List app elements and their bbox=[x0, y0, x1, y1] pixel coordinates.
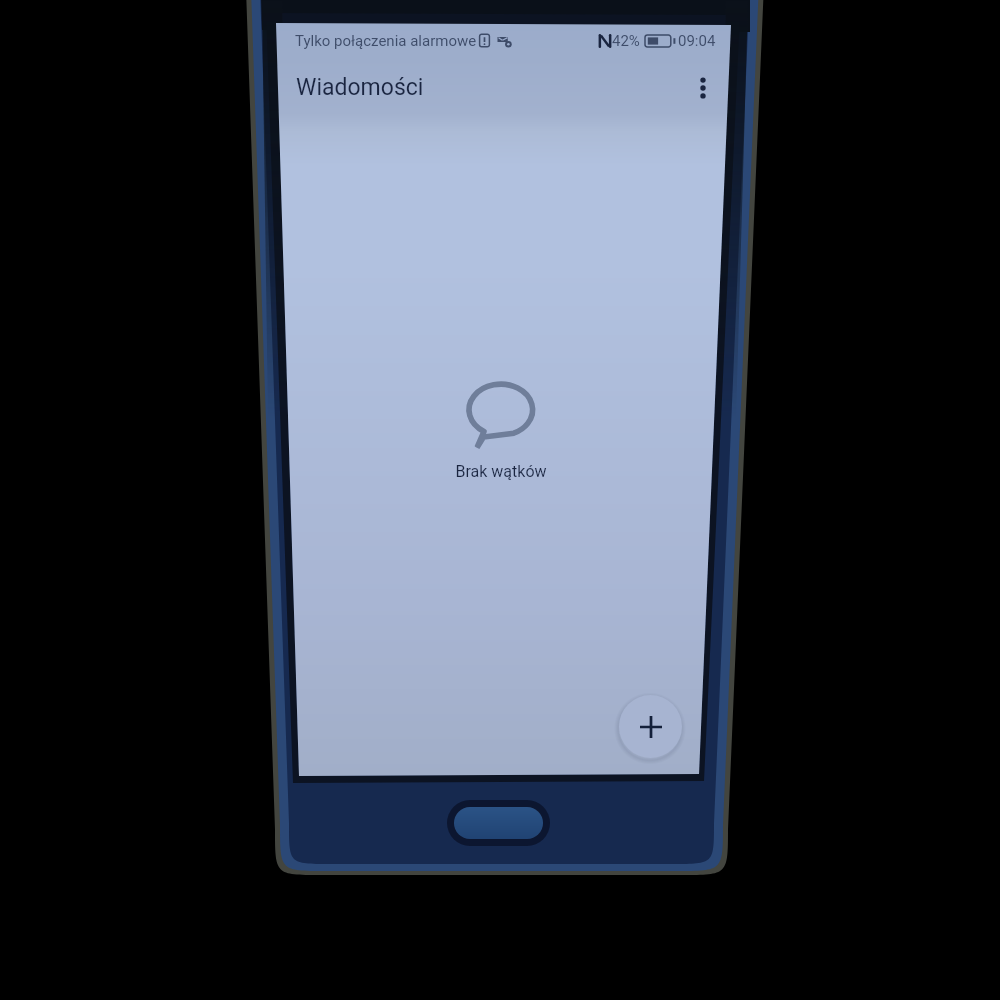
staticText: 09:04 bbox=[678, 32, 716, 50]
button[interactable]: More options bbox=[679, 64, 727, 112]
staticText: Tylko połączenia alarmowe bbox=[295, 32, 477, 50]
staticText: Wiadomości bbox=[296, 74, 424, 101]
staticText: Brak wątków bbox=[455, 462, 547, 481]
staticText: 42% bbox=[612, 32, 640, 50]
button[interactable]: New conversation bbox=[619, 695, 682, 758]
